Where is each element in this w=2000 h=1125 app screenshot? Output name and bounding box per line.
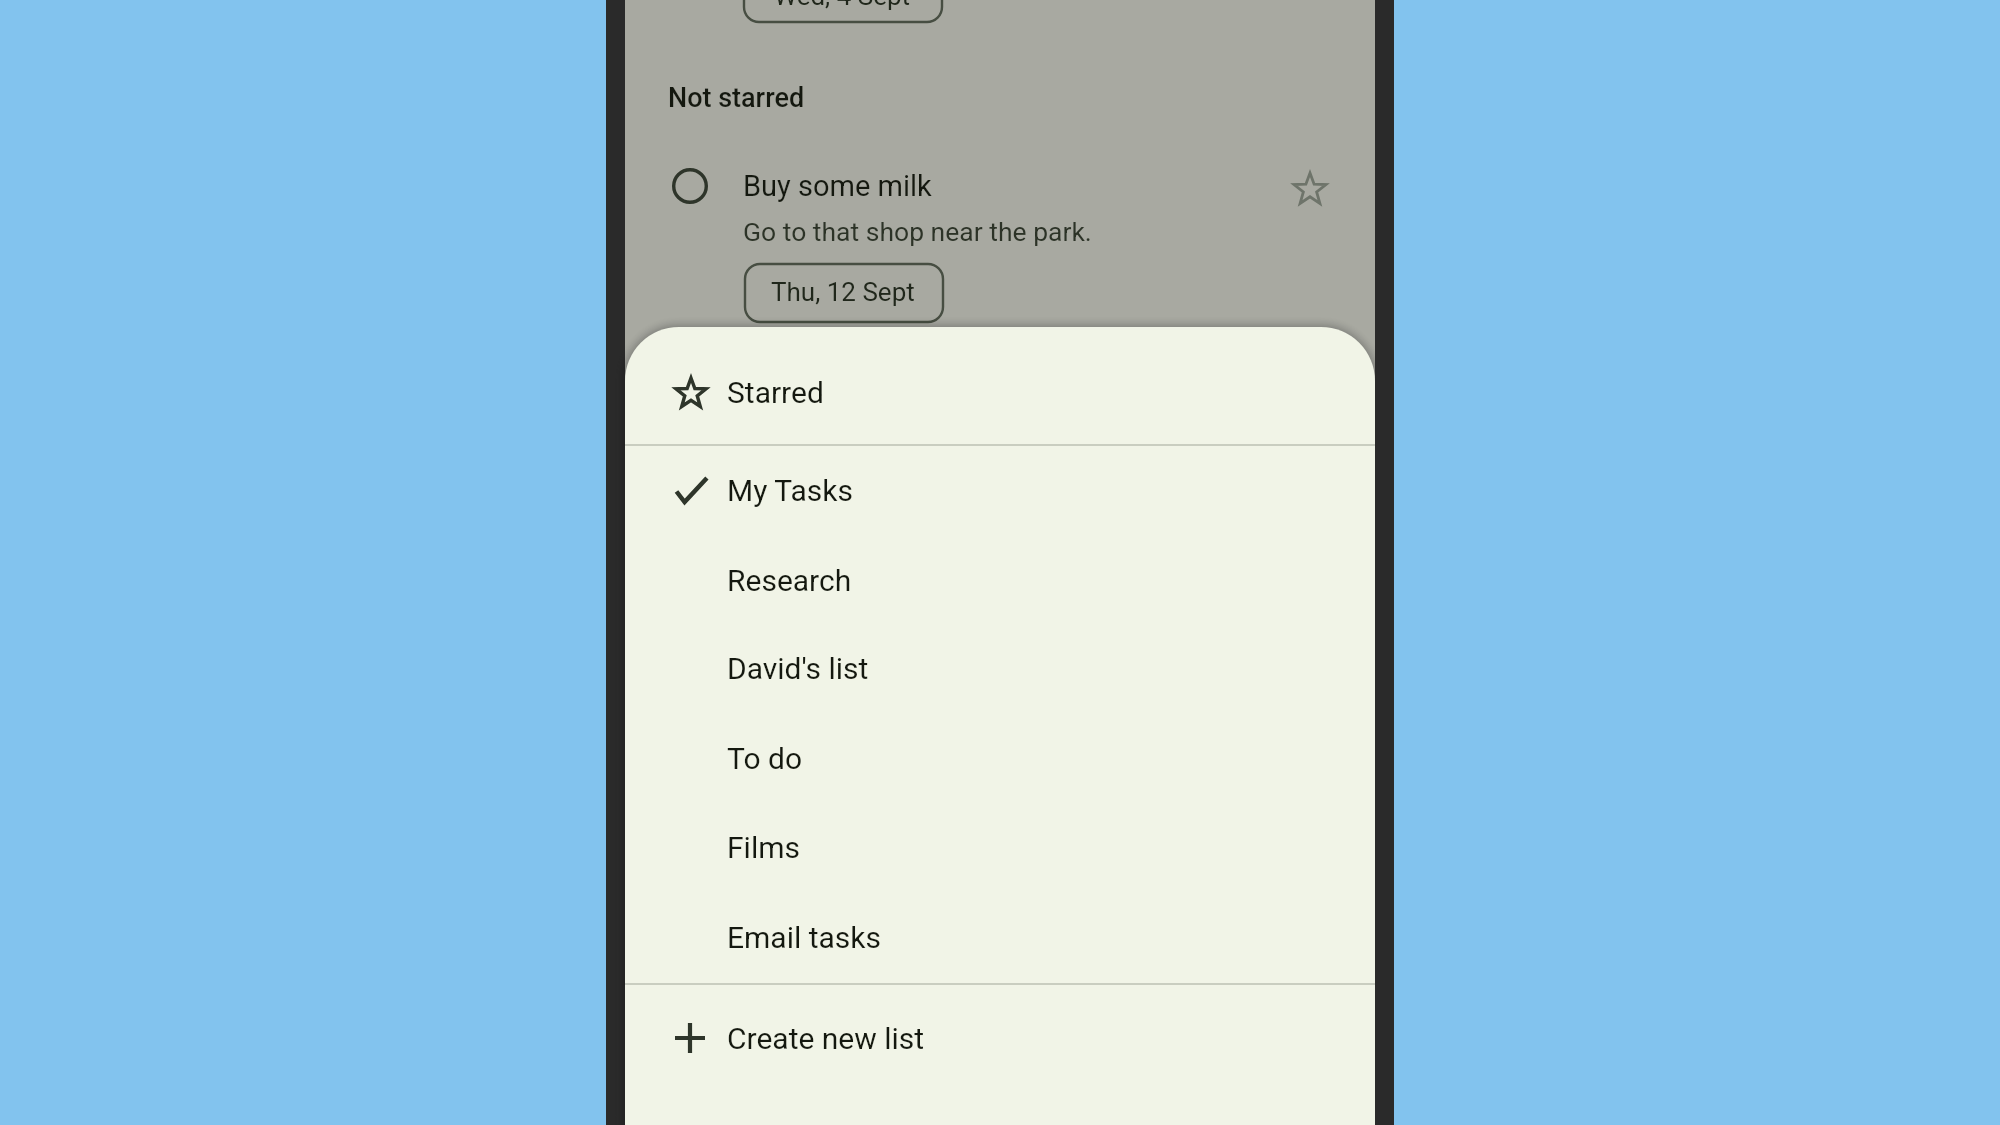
staticText: Buy some milk (743, 169, 932, 203)
button[interactable]: Starred list (625, 327, 1375, 445)
staticText: David's list (727, 651, 869, 686)
staticText: Wed, 4 Sept (774, 0, 911, 11)
button[interactable]: Create new list (625, 985, 1375, 1125)
other: Starred list (676, 378, 706, 408)
button[interactable]: Email tasks (625, 893, 1375, 983)
staticText: To do (727, 741, 803, 776)
button[interactable]: Thu, 12 Sept (745, 264, 943, 322)
other: Selected (674, 478, 707, 503)
staticText: Starred (727, 375, 824, 410)
button[interactable]: Research (625, 535, 1375, 625)
button[interactable]: Selected (625, 445, 1375, 535)
staticText: My Tasks (727, 473, 853, 508)
other: Create new list (675, 1023, 705, 1053)
button[interactable]: David's list (625, 624, 1375, 714)
staticText: Go to that shop near the park. (743, 216, 1092, 247)
staticText: Research (727, 563, 852, 598)
staticText: Films (727, 830, 800, 865)
button[interactable]: Dismiss list picker (625, 0, 1375, 327)
staticText: Thu, 12 Sept (771, 277, 915, 307)
button[interactable]: To do (625, 714, 1375, 804)
button[interactable]: Films (625, 803, 1375, 893)
button[interactable]: Wed, 4 Sept (744, 0, 942, 22)
button[interactable]: Star task (1294, 173, 1326, 204)
staticText: Not starred (668, 82, 805, 114)
button[interactable]: Mark complete (672, 168, 708, 204)
staticText: Email tasks (727, 920, 882, 955)
staticText: Create new list (727, 1021, 925, 1056)
